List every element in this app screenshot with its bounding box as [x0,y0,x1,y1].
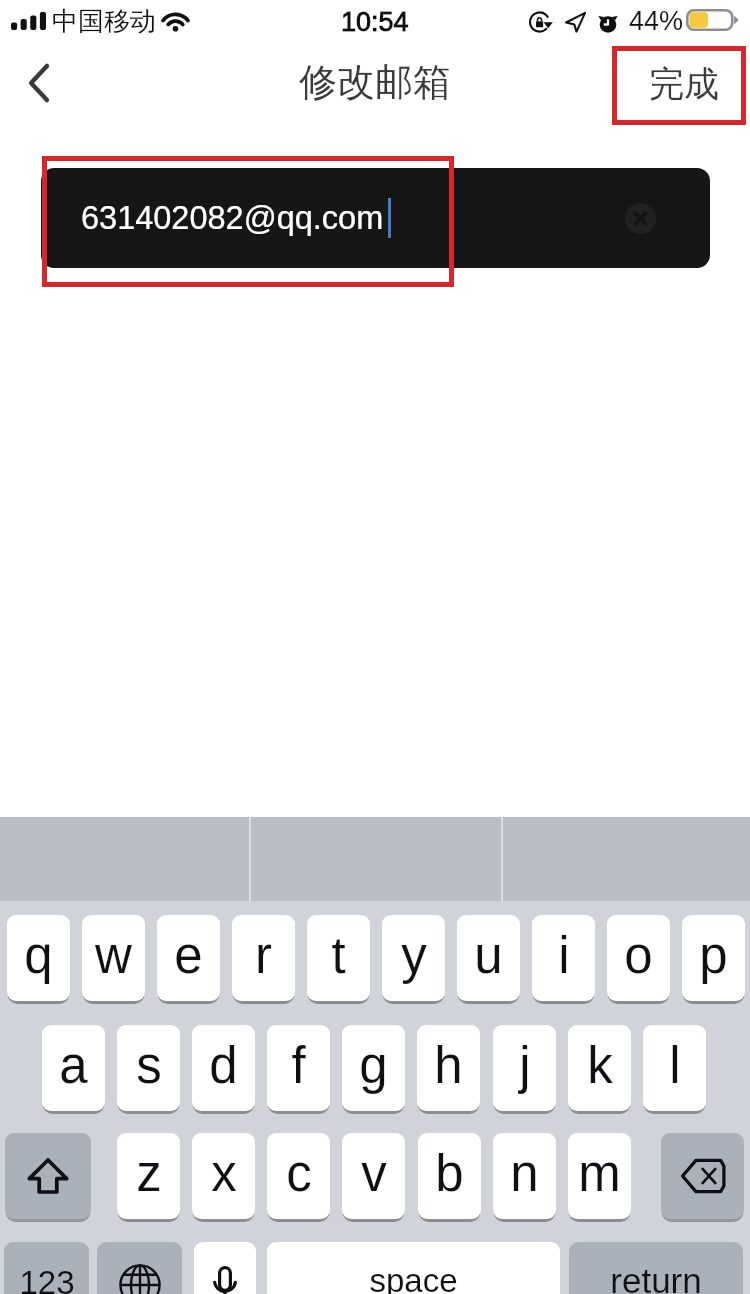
staticText: return [610,1261,702,1294]
staticText: n [510,1145,539,1202]
button[interactable]: a [42,1025,105,1111]
button[interactable]: f [267,1025,330,1111]
button[interactable]: k [568,1025,631,1111]
staticText: 中国移动 [52,5,156,38]
staticText: q [24,927,53,984]
button[interactable]: z [117,1133,180,1219]
staticText: z [136,1145,162,1202]
button[interactable]: return [569,1242,743,1294]
staticText: r [255,927,272,984]
button[interactable]: u [457,915,520,1001]
button[interactable]: space [267,1242,560,1294]
button[interactable]: Shift [5,1133,91,1219]
button[interactable]: y [382,915,445,1001]
staticText: 修改邮箱 [299,58,451,106]
button[interactable]: t [307,915,370,1001]
button[interactable]: e [157,915,220,1001]
staticText: s [136,1037,162,1094]
button[interactable]: 631402082@qq.com [41,168,710,268]
button[interactable]: x [192,1133,255,1219]
staticText: 631402082@qq.com [81,200,384,236]
staticText: p [699,927,728,984]
button[interactable]: o [607,915,670,1001]
button[interactable]: v [342,1133,405,1219]
staticText: l [669,1037,681,1094]
button[interactable]: s [117,1025,180,1111]
button[interactable]: Switch keyboard [97,1242,182,1294]
button[interactable]: Backspace [661,1133,744,1219]
button[interactable]: Dictation [194,1242,256,1294]
staticText: o [624,927,653,984]
button[interactable]: h [417,1025,480,1111]
button[interactable]: d [192,1025,255,1111]
button[interactable]: w [82,915,145,1001]
staticText: f [291,1037,306,1094]
button[interactable]: 123 [4,1242,89,1294]
button[interactable]: Back [3,47,75,119]
staticText: 10:54 [341,7,409,37]
staticText: 完成 [649,62,719,106]
staticText: a [59,1037,88,1094]
button[interactable]: r [232,915,295,1001]
button[interactable]: l [643,1025,706,1111]
button[interactable]: n [493,1133,556,1219]
staticText: j [519,1037,531,1094]
button[interactable]: p [682,915,745,1001]
staticText: m [578,1145,621,1202]
button[interactable]: j [493,1025,556,1111]
button[interactable]: i [532,915,595,1001]
button[interactable]: q [7,915,70,1001]
staticText: h [434,1037,463,1094]
staticText: v [361,1145,387,1202]
staticText: 44% [629,6,684,36]
staticText: space [369,1262,458,1294]
button[interactable]: m [568,1133,631,1219]
staticText: d [209,1037,238,1094]
staticText: w [95,927,132,984]
staticText: y [401,927,427,984]
staticText: x [211,1145,237,1202]
staticText: b [435,1145,464,1202]
staticText: g [359,1037,388,1094]
button[interactable]: b [418,1133,481,1219]
staticText: i [558,927,570,984]
staticText: t [331,927,346,984]
staticText: 123 [19,1264,75,1294]
button[interactable]: g [342,1025,405,1111]
button[interactable]: Clear text [625,203,656,234]
staticText: k [587,1037,613,1094]
button[interactable]: c [267,1133,330,1219]
staticText: c [286,1145,312,1202]
button[interactable]: 完成 [638,50,730,122]
staticText: e [174,927,203,984]
staticText: u [474,927,503,984]
